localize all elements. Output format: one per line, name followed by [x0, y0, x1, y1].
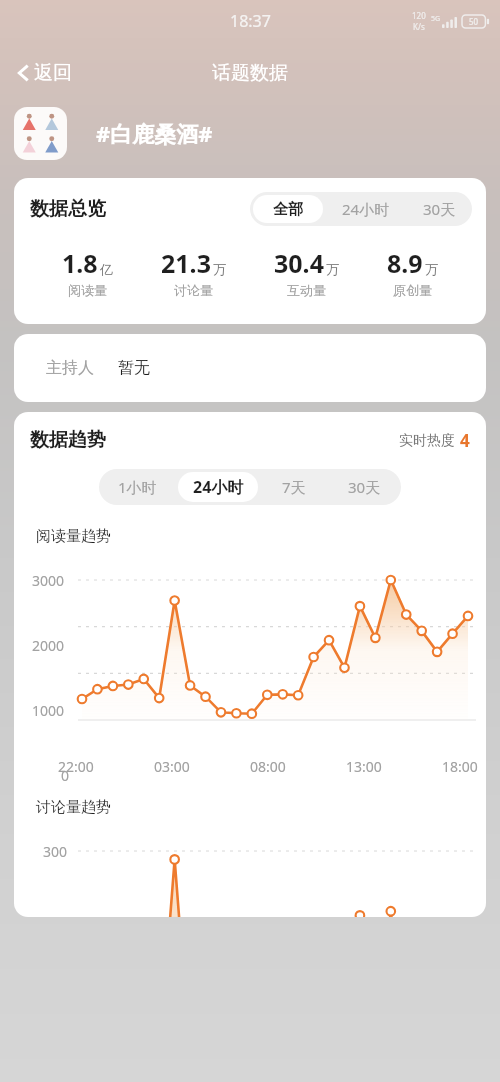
- staticText: 3000: [32, 571, 65, 590]
- staticText: 4: [460, 429, 470, 452]
- button[interactable]: 21.3: [161, 246, 226, 298]
- staticText: 7天: [282, 477, 306, 497]
- button[interactable]: Topic avatar: [0, 100, 500, 166]
- staticText: 互动量: [287, 282, 326, 298]
- staticText: 08:00: [250, 757, 286, 776]
- staticText: 讨论量: [174, 282, 213, 298]
- button[interactable]: 实时热度: [399, 429, 470, 452]
- staticText: 120: [412, 10, 426, 21]
- staticText: 18:00: [442, 757, 478, 776]
- staticText: 24小时: [342, 199, 390, 219]
- staticText: 50: [469, 16, 479, 27]
- staticText: 0: [61, 766, 70, 785]
- staticText: 30天: [423, 199, 456, 219]
- button[interactable]: 主持人: [14, 334, 486, 402]
- staticText: 300: [43, 842, 68, 861]
- staticText: 8.9: [387, 246, 423, 280]
- staticText: 30天: [348, 477, 381, 497]
- staticText: 返回: [34, 61, 72, 85]
- staticText: 阅读量: [68, 282, 107, 298]
- button[interactable]: 24小时: [178, 472, 258, 502]
- staticText: 全部: [273, 200, 303, 219]
- staticText: 13:00: [346, 757, 382, 776]
- staticText: 话题数据: [212, 61, 288, 85]
- staticText: K/s: [413, 21, 425, 32]
- staticText: 03:00: [154, 757, 190, 776]
- button[interactable]: 8.9: [387, 246, 438, 298]
- button[interactable]: 1小时: [102, 472, 172, 502]
- button[interactable]: 24小时: [329, 195, 403, 223]
- staticText: 18:37: [230, 10, 271, 32]
- staticText: 原创量: [393, 282, 432, 298]
- button[interactable]: 7天: [264, 472, 324, 502]
- staticText: 30.4: [274, 246, 324, 280]
- staticText: 数据趋势: [30, 428, 106, 452]
- staticText: 万: [213, 261, 226, 277]
- staticText: 22:00: [58, 757, 94, 776]
- button[interactable]: 30.4: [274, 246, 339, 298]
- staticText: #白鹿桑酒#: [96, 118, 213, 148]
- staticText: 2000: [32, 636, 65, 655]
- other: Topic avatar: [14, 107, 67, 160]
- staticText: 讨论量趋势: [36, 798, 111, 817]
- button[interactable]: 1.8: [62, 246, 113, 298]
- staticText: 5G: [431, 14, 441, 24]
- button[interactable]: 全部: [253, 195, 323, 223]
- staticText: 24小时: [193, 476, 244, 498]
- staticText: 主持人: [46, 358, 94, 378]
- staticText: 亿: [100, 261, 113, 277]
- staticText: 阅读量趋势: [36, 527, 111, 546]
- staticText: 万: [326, 261, 339, 277]
- staticText: 1000: [32, 701, 65, 720]
- staticText: 1小时: [118, 477, 157, 497]
- staticText: 1.8: [62, 246, 98, 280]
- staticText: 实时热度: [399, 432, 455, 450]
- staticText: 21.3: [161, 246, 211, 280]
- staticText: 万: [425, 261, 438, 277]
- staticText: 暂无: [118, 358, 150, 378]
- button[interactable]: 返回: [10, 56, 78, 90]
- button[interactable]: 30天: [409, 195, 469, 223]
- button[interactable]: 30天: [330, 472, 398, 502]
- staticText: 数据总览: [30, 197, 106, 221]
